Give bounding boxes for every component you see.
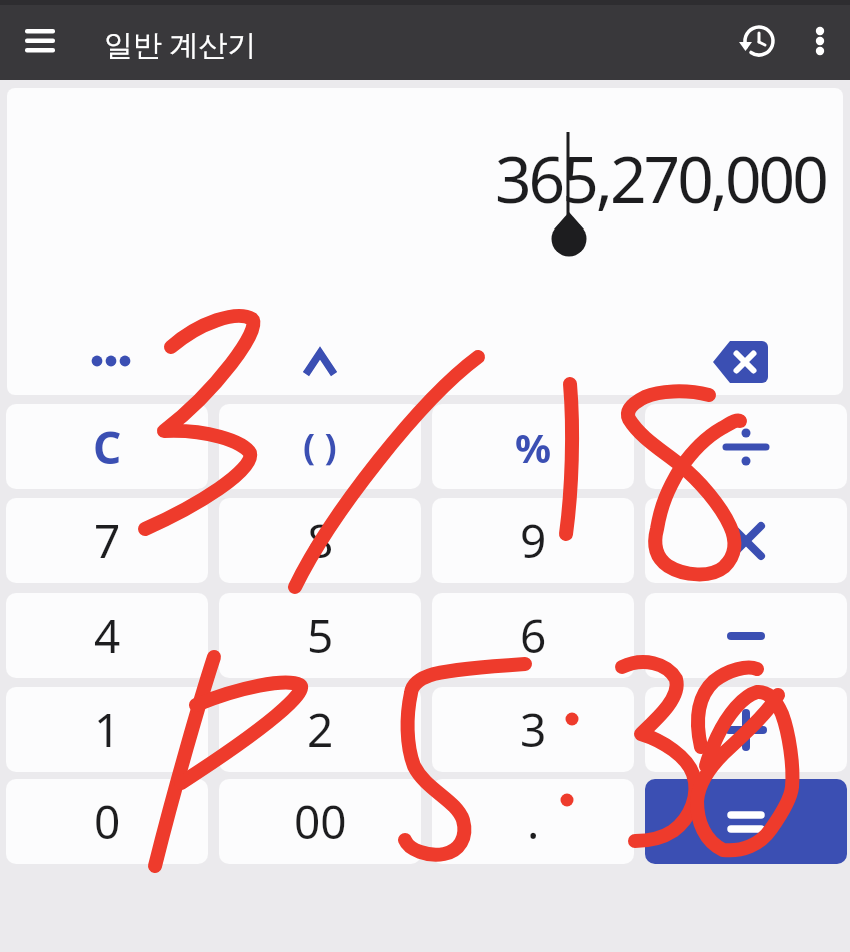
staticText: 9 bbox=[520, 509, 547, 572]
staticText: 3 bbox=[520, 698, 547, 761]
staticText: 5 bbox=[307, 604, 334, 667]
staticText: 00 bbox=[294, 790, 347, 853]
staticText: % bbox=[515, 420, 552, 474]
button[interactable] bbox=[697, 332, 783, 392]
button[interactable]: 7 bbox=[6, 498, 208, 583]
button[interactable]: 3 bbox=[432, 687, 634, 772]
staticText: 365,270,000 bbox=[495, 135, 826, 222]
button[interactable] bbox=[645, 687, 847, 772]
staticText: 2 bbox=[307, 698, 334, 761]
button[interactable]: 8 bbox=[219, 498, 421, 583]
button[interactable]: 9 bbox=[432, 498, 634, 583]
button[interactable]: ( ) bbox=[219, 404, 421, 489]
staticText: 0 bbox=[94, 790, 121, 853]
staticText: 6 bbox=[520, 604, 547, 667]
button[interactable] bbox=[290, 338, 350, 386]
button[interactable] bbox=[645, 498, 847, 583]
button[interactable]: 1 bbox=[6, 687, 208, 772]
button[interactable]: 0 bbox=[6, 779, 208, 864]
button[interactable]: C bbox=[6, 404, 208, 489]
button[interactable]: % bbox=[432, 404, 634, 489]
button[interactable] bbox=[733, 15, 785, 67]
button[interactable]: 5 bbox=[219, 593, 421, 678]
staticText: 7 bbox=[94, 509, 121, 572]
staticText: 4 bbox=[94, 604, 121, 667]
button[interactable]: 2 bbox=[219, 687, 421, 772]
button[interactable] bbox=[645, 779, 847, 864]
button[interactable]: 00 bbox=[219, 779, 421, 864]
button[interactable]: 4 bbox=[6, 593, 208, 678]
button[interactable] bbox=[645, 593, 847, 678]
staticText: . bbox=[527, 790, 540, 853]
button[interactable] bbox=[645, 404, 847, 489]
button[interactable]: 6 bbox=[432, 593, 634, 678]
button[interactable]: . bbox=[432, 779, 634, 864]
staticText: ( ) bbox=[303, 422, 337, 471]
staticText: 1 bbox=[94, 698, 121, 761]
button[interactable] bbox=[14, 20, 70, 64]
staticText: 일반 계산기 bbox=[104, 24, 257, 64]
button[interactable] bbox=[77, 338, 147, 386]
button[interactable] bbox=[798, 15, 842, 67]
staticText: 8 bbox=[307, 509, 334, 572]
staticText: C bbox=[93, 417, 122, 477]
